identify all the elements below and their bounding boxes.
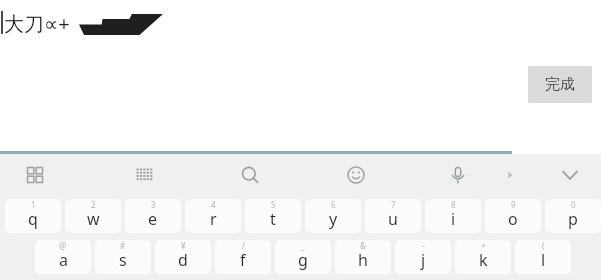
button[interactable]: @: [35, 240, 91, 274]
staticText: p: [568, 208, 578, 230]
staticText: h: [358, 249, 368, 271]
button[interactable]: &: [335, 240, 391, 274]
staticText: u: [388, 208, 398, 230]
button[interactable]: 1: [5, 199, 61, 233]
staticText: w: [87, 208, 100, 230]
staticText: 4: [211, 199, 216, 210]
staticText: 9: [511, 199, 516, 210]
button[interactable]: Hide keyboard: [556, 161, 584, 189]
button[interactable]: 8: [425, 199, 481, 233]
staticText: +: [481, 240, 486, 251]
staticText: e: [148, 208, 158, 230]
staticText: 3: [151, 199, 156, 210]
staticText: /: [242, 240, 245, 251]
button[interactable]: Change keyboard: [131, 161, 159, 189]
staticText: _: [301, 240, 305, 251]
button[interactable]: #: [95, 240, 151, 274]
button[interactable]: Apps: [21, 161, 49, 189]
staticText: &: [360, 240, 366, 251]
staticText: y: [329, 208, 338, 230]
staticText: t: [270, 208, 276, 230]
staticText: 大刀∝+: [4, 10, 70, 37]
button[interactable]: 4: [185, 199, 241, 233]
staticText: (: [542, 240, 545, 251]
staticText: ¥: [181, 240, 186, 251]
staticText: 完成: [545, 75, 575, 94]
button[interactable]: _: [275, 240, 331, 274]
staticText: s: [119, 249, 127, 271]
staticText: l: [541, 249, 546, 271]
button[interactable]: 2: [65, 199, 121, 233]
staticText: k: [479, 249, 488, 271]
staticText: o: [508, 208, 518, 230]
button[interactable]: (: [515, 240, 571, 274]
staticText: @: [59, 240, 67, 251]
button[interactable]: 完成: [528, 66, 592, 103]
staticText: d: [178, 249, 188, 271]
button[interactable]: Search: [236, 161, 264, 189]
button[interactable]: 0: [545, 199, 601, 233]
staticText: 2: [91, 199, 96, 210]
button[interactable]: ¥: [155, 240, 211, 274]
staticText: r: [210, 208, 217, 230]
staticText: 8: [451, 199, 456, 210]
button[interactable]: +: [455, 240, 511, 274]
staticText: 6: [331, 199, 336, 210]
staticText: -: [422, 240, 425, 251]
staticText: q: [28, 208, 38, 230]
button[interactable]: /: [215, 240, 271, 274]
button[interactable]: Emoji: [342, 161, 370, 189]
button[interactable]: 3: [125, 199, 181, 233]
staticText: i: [451, 208, 456, 230]
staticText: g: [298, 249, 308, 271]
button[interactable]: Voice input: [444, 161, 472, 189]
button[interactable]: -: [395, 240, 451, 274]
staticText: 7: [391, 199, 396, 210]
button[interactable]: 6: [305, 199, 361, 233]
button[interactable]: 7: [365, 199, 421, 233]
staticText: 5: [271, 199, 276, 210]
staticText: j: [421, 249, 426, 271]
button[interactable]: 5: [245, 199, 301, 233]
staticText: a: [59, 249, 68, 271]
staticText: 1: [31, 199, 36, 210]
staticText: #: [120, 240, 126, 251]
staticText: f: [240, 249, 246, 271]
button[interactable]: More: [496, 161, 524, 189]
staticText: 0: [571, 199, 576, 210]
button[interactable]: 9: [485, 199, 541, 233]
